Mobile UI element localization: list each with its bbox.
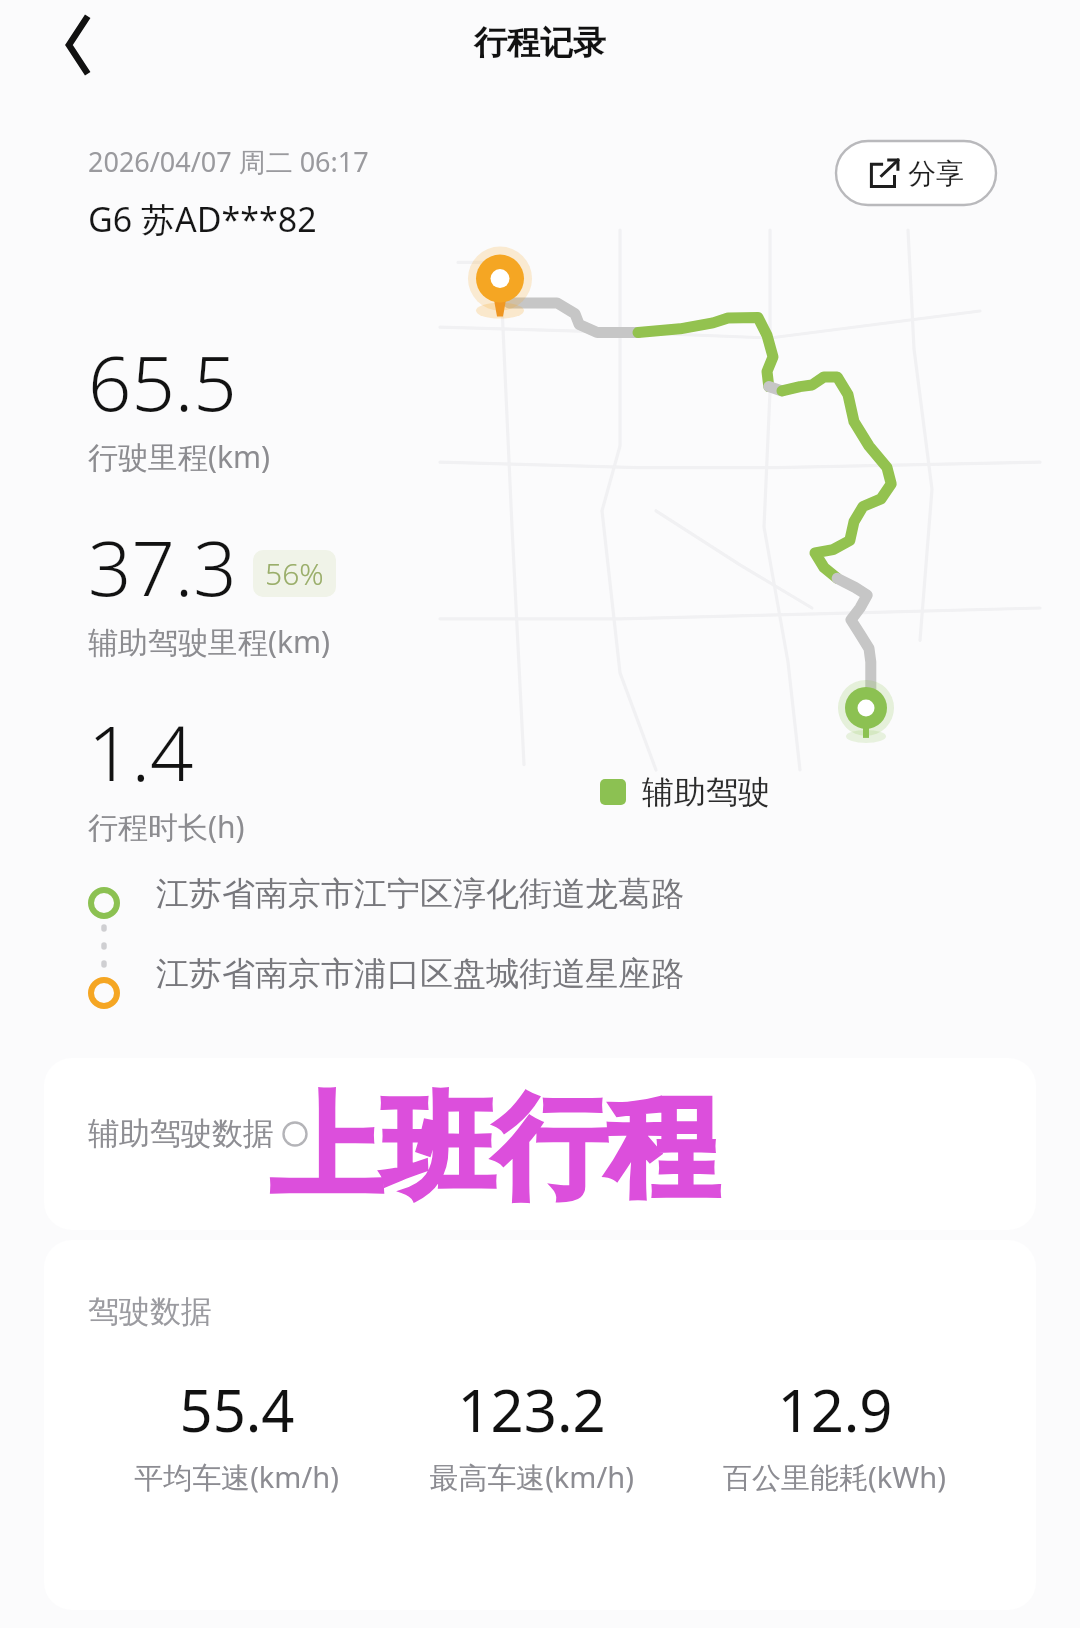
staticText: 上班行程	[270, 1068, 718, 1209]
staticText: 上班行程	[270, 1088, 718, 1229]
staticText: 辅助驾驶	[642, 772, 770, 812]
staticText: 分享	[908, 156, 964, 191]
staticText: 上班行程	[260, 1078, 708, 1219]
staticText: 平均车速(km/h)	[134, 1457, 339, 1497]
button[interactable]: 分享	[836, 141, 996, 205]
button[interactable]: Back	[40, 6, 112, 84]
button[interactable]: 驾驶数据	[44, 1240, 1036, 1610]
staticText: 江苏省南京市浦口区盘城街道星座路	[156, 953, 684, 995]
staticText: 56%	[265, 553, 324, 594]
staticText: 123.2	[457, 1370, 606, 1449]
staticText: 辅助驾驶数据	[88, 1114, 274, 1153]
other: Info	[282, 1121, 308, 1147]
staticText: 上班行程	[280, 1088, 728, 1229]
staticText: 55.4	[179, 1370, 295, 1449]
staticText: 行程时长(h)	[88, 806, 245, 847]
staticText: 65.5	[88, 330, 237, 434]
staticText: 辅助驾驶里程(km)	[88, 621, 331, 662]
button[interactable]: 辅助驾驶数据	[44, 1058, 1036, 1230]
staticText: 37.3	[88, 515, 237, 619]
staticText: 上班行程	[280, 1078, 728, 1219]
staticText: G6 苏AD***82	[88, 196, 317, 242]
staticText: 2026/04/07 周二 06:17	[88, 143, 369, 180]
staticText: 上班行程	[270, 1078, 718, 1219]
staticText: 上班行程	[280, 1068, 728, 1209]
staticText: 上班行程	[260, 1088, 708, 1229]
staticText: 百公里能耗(kWh)	[723, 1457, 946, 1497]
staticText: 行程记录	[474, 22, 606, 64]
staticText: 行驶里程(km)	[88, 436, 271, 477]
staticText: 上班行程	[260, 1068, 708, 1209]
staticText: 江苏省南京市江宁区淳化街道龙葛路	[156, 873, 684, 915]
staticText: 12.9	[777, 1370, 893, 1449]
staticText: 驾驶数据	[88, 1292, 212, 1331]
staticText: 1.4	[88, 700, 194, 804]
staticText: 最高车速(km/h)	[429, 1457, 634, 1497]
